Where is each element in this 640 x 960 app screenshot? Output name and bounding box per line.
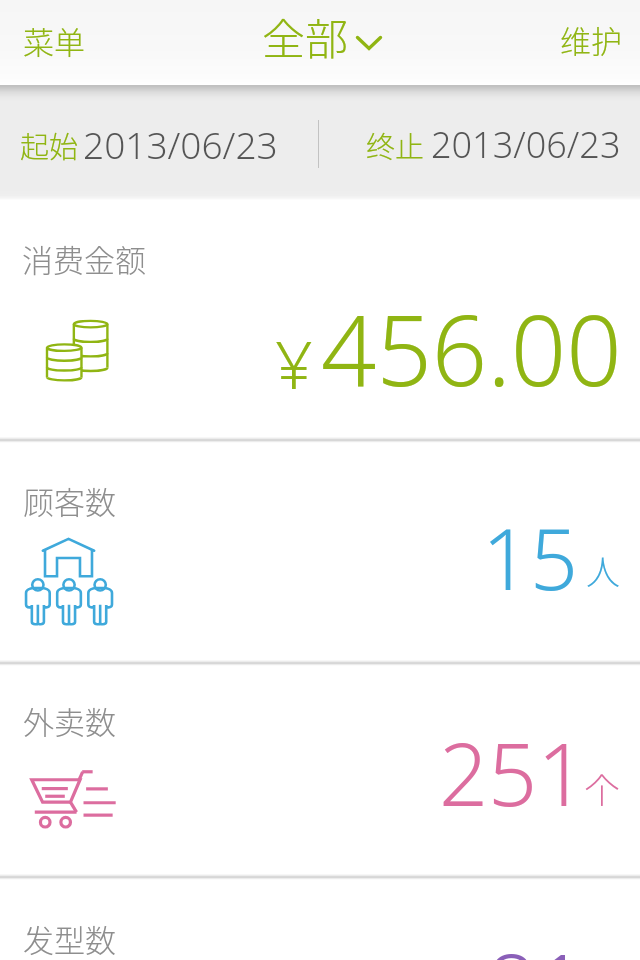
button[interactable]: 菜单 [0, 0, 106, 85]
staticText: 起始 [20, 124, 79, 166]
staticText: 81 [487, 925, 586, 960]
staticText: 维护 [560, 17, 622, 62]
staticText: 消费金额 [22, 236, 146, 281]
staticText: 个 [585, 764, 619, 813]
staticText: 终止 [366, 124, 425, 166]
staticText: 顾客数 [23, 478, 116, 523]
other: Revenue [47, 320, 108, 381]
button[interactable]: 外卖数 [0, 662, 640, 875]
staticText: 外卖数 [23, 698, 116, 743]
button[interactable]: 发型数 [0, 876, 640, 960]
button[interactable]: 消费金额 [0, 200, 640, 438]
staticText: 发型数 [23, 916, 116, 960]
staticText: 2013/06/23 [83, 119, 278, 169]
button[interactable]: 终止 [319, 86, 640, 199]
other: Customers [25, 538, 112, 626]
button[interactable]: 全部 [250, 0, 396, 85]
staticText: 全部 [262, 5, 348, 67]
staticText: ¥ [275, 318, 313, 408]
staticText: 15 [482, 500, 578, 614]
staticText: 菜单 [23, 18, 85, 63]
staticText: 251 [439, 714, 587, 831]
other: Takeaway orders [30, 770, 117, 829]
staticText: 人 [586, 546, 620, 595]
staticText: 2013/06/23 [431, 120, 621, 169]
button[interactable]: 维护 [536, 0, 640, 85]
staticText: 456.00 [321, 282, 622, 414]
button[interactable]: 顾客数 [0, 439, 640, 661]
button[interactable]: 起始 [0, 86, 318, 199]
